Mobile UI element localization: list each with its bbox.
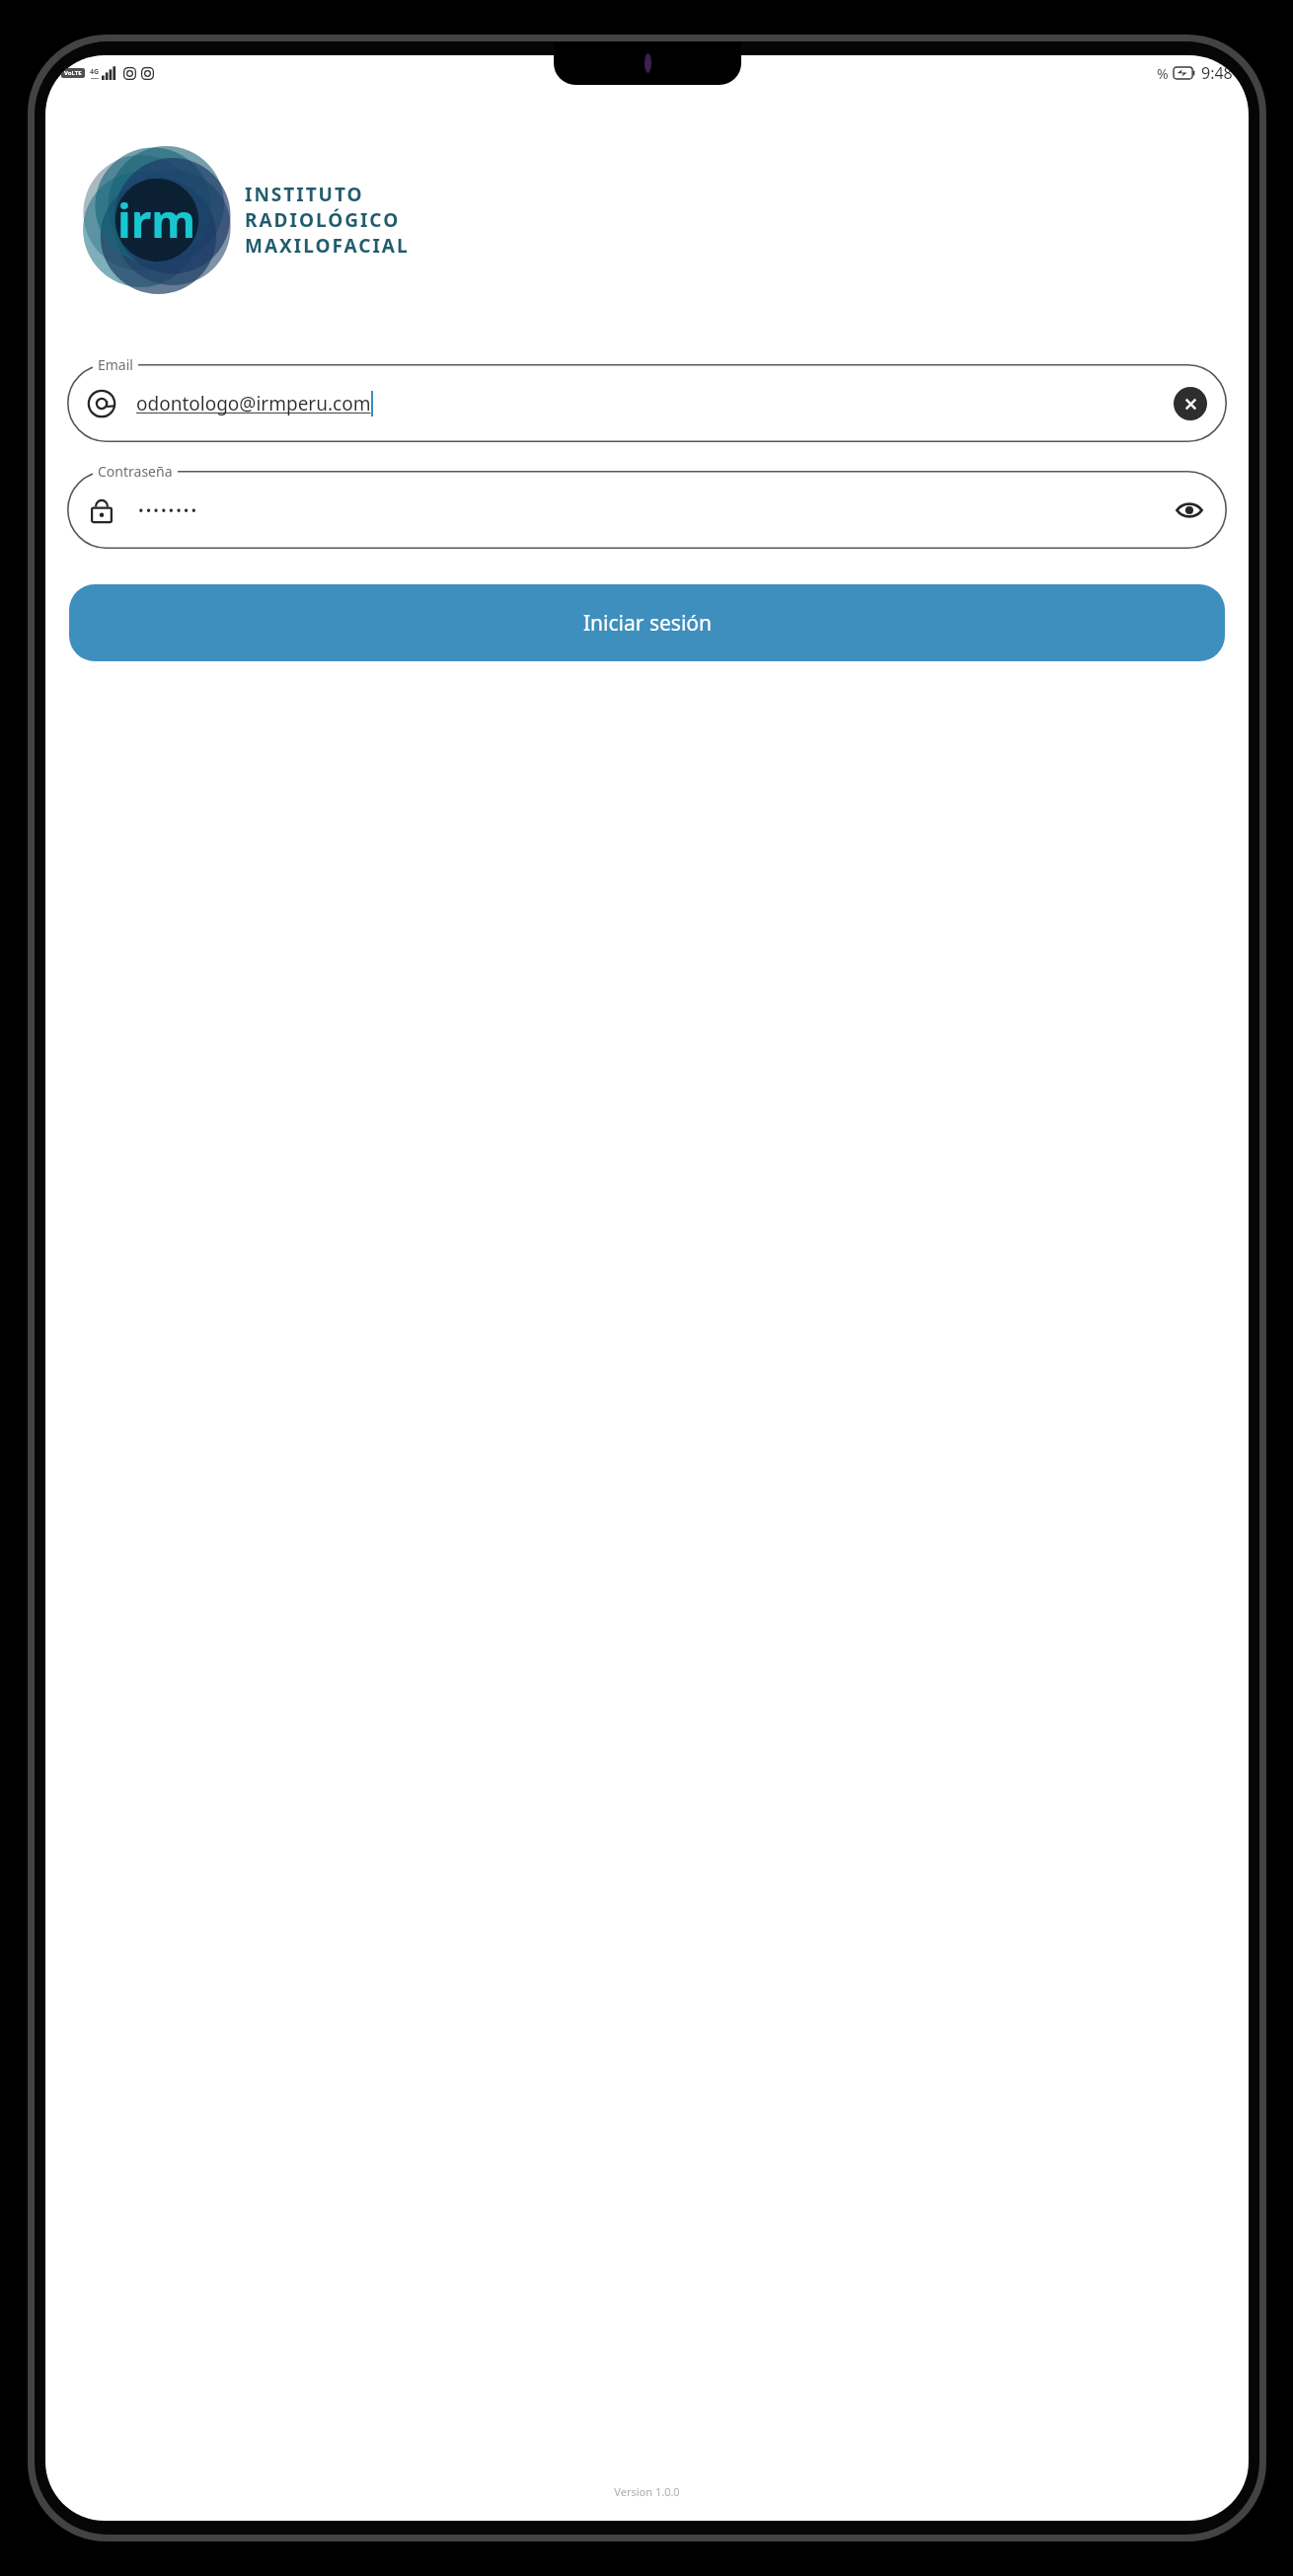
staticText: •••••••• (138, 500, 199, 520)
staticText: Email (98, 355, 133, 374)
staticText: 4G (90, 67, 100, 77)
button[interactable]: Clear email (1174, 387, 1207, 420)
other: Email (87, 389, 116, 418)
other: Password (87, 495, 116, 525)
staticText: INSTITUTO (245, 182, 364, 207)
staticText: odontologo@irmperu.com (136, 391, 371, 417)
staticText: 9:48 (1201, 62, 1233, 84)
staticText: Iniciar sesión (583, 609, 712, 638)
button[interactable]: Iniciar sesión (69, 584, 1225, 661)
staticText: MAXILOFACIAL (245, 233, 410, 259)
staticText: % (1157, 64, 1169, 83)
staticText: RADIOLÓGICO (245, 207, 401, 233)
button[interactable]: Show password (1172, 492, 1207, 528)
staticText: VoLTE (64, 69, 82, 77)
staticText: Version 1.0.0 (45, 2484, 1249, 2499)
staticText: Contraseña (98, 462, 173, 481)
staticText: irm (117, 189, 196, 252)
